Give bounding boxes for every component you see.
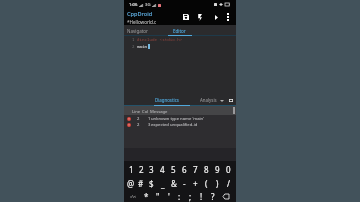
other: Expand bbox=[220, 100, 224, 102]
button[interactable]: ) bbox=[212, 176, 223, 190]
staticText: 1:06 bbox=[129, 2, 138, 8]
button[interactable]: Save bbox=[180, 11, 192, 23]
staticText: @ bbox=[127, 178, 135, 189]
staticText: expected unqualified-id bbox=[151, 122, 198, 128]
staticText: 3 bbox=[148, 122, 151, 128]
staticText: 2 bbox=[132, 44, 135, 50]
staticText: ( bbox=[205, 178, 208, 189]
staticText: 2 bbox=[139, 164, 144, 175]
button[interactable]: 9 bbox=[212, 162, 223, 176]
staticText: 8 bbox=[204, 164, 209, 175]
staticText: Message bbox=[150, 109, 168, 115]
staticText: Editor bbox=[173, 28, 186, 34]
button[interactable]: : bbox=[174, 190, 185, 202]
staticText: _ bbox=[161, 178, 165, 189]
button[interactable]: ; bbox=[185, 190, 196, 202]
staticText: & bbox=[171, 178, 177, 189]
button[interactable]: ? bbox=[207, 190, 218, 202]
button[interactable]: # bbox=[136, 176, 146, 190]
staticText: 1 bbox=[129, 164, 134, 175]
staticText: $ bbox=[149, 178, 154, 189]
button[interactable]: Run bbox=[210, 11, 222, 23]
button[interactable]: @ bbox=[126, 176, 136, 190]
staticText: / bbox=[227, 178, 230, 189]
staticText: 5 bbox=[171, 164, 176, 175]
button[interactable]: 3 bbox=[146, 162, 157, 176]
button[interactable]: Backspace bbox=[218, 190, 234, 202]
staticText: 9 bbox=[215, 164, 220, 175]
button[interactable]: 2 bbox=[136, 162, 146, 176]
staticText: *Helloworld.c bbox=[127, 19, 157, 25]
staticText: =\< bbox=[130, 194, 137, 199]
button[interactable]: 8 bbox=[201, 162, 212, 176]
button[interactable]: ( bbox=[201, 176, 212, 190]
button[interactable]: / bbox=[223, 176, 234, 190]
button[interactable]: 2 bbox=[124, 121, 236, 127]
staticText: + bbox=[193, 178, 198, 189]
staticText: ! bbox=[200, 191, 203, 202]
staticText: unknown type name 'main' bbox=[151, 116, 205, 122]
button[interactable]: - bbox=[179, 176, 190, 190]
button[interactable]: 5 bbox=[168, 162, 179, 176]
button[interactable]: 1 bbox=[126, 162, 136, 176]
staticText: main bbox=[137, 44, 148, 50]
staticText: Col bbox=[142, 109, 149, 115]
button[interactable]: & bbox=[168, 176, 179, 190]
staticText: 2 bbox=[137, 122, 140, 128]
staticText: 0 bbox=[226, 164, 231, 175]
other: Console bbox=[229, 99, 233, 102]
button[interactable]: ' bbox=[163, 190, 174, 202]
staticText: #include <stdio.h> bbox=[137, 37, 183, 43]
staticText: # bbox=[138, 178, 144, 189]
button[interactable]: 0 bbox=[223, 162, 234, 176]
button[interactable]: 6 bbox=[179, 162, 190, 176]
button[interactable]: + bbox=[190, 176, 201, 190]
staticText: ? bbox=[211, 191, 215, 202]
staticText: 1 bbox=[132, 37, 135, 43]
button[interactable]: 4 bbox=[157, 162, 168, 176]
staticText: 3 bbox=[149, 164, 154, 175]
staticText: 1 bbox=[148, 116, 151, 122]
button[interactable]: _ bbox=[157, 176, 168, 190]
button[interactable]: Diagnostics bbox=[155, 97, 179, 103]
staticText: 6 bbox=[182, 164, 187, 175]
staticText: ) bbox=[216, 178, 219, 189]
staticText: Navigator bbox=[127, 28, 148, 34]
button[interactable]: ! bbox=[196, 190, 207, 202]
button[interactable]: 2 bbox=[124, 115, 236, 121]
staticText: ; bbox=[189, 191, 192, 202]
button[interactable]: Build bbox=[194, 11, 206, 23]
staticText: 3G bbox=[145, 2, 151, 8]
button[interactable]: =\< bbox=[126, 190, 141, 202]
button[interactable]: * bbox=[141, 190, 152, 202]
staticText: 2 bbox=[137, 116, 140, 122]
staticText: Line bbox=[132, 109, 141, 115]
button[interactable]: Analysis bbox=[200, 97, 217, 103]
button[interactable]: $ bbox=[146, 176, 157, 190]
staticText: * bbox=[144, 191, 149, 202]
staticText: " bbox=[156, 191, 160, 202]
staticText: - bbox=[183, 178, 186, 189]
button[interactable]: " bbox=[152, 190, 163, 202]
staticText: CppDroid bbox=[127, 10, 153, 18]
staticText: ' bbox=[168, 191, 170, 202]
button[interactable]: 7 bbox=[190, 162, 201, 176]
staticText: : bbox=[178, 191, 181, 202]
staticText: 4 bbox=[160, 164, 165, 175]
button[interactable]: More options bbox=[222, 11, 234, 23]
staticText: 7 bbox=[193, 164, 198, 175]
